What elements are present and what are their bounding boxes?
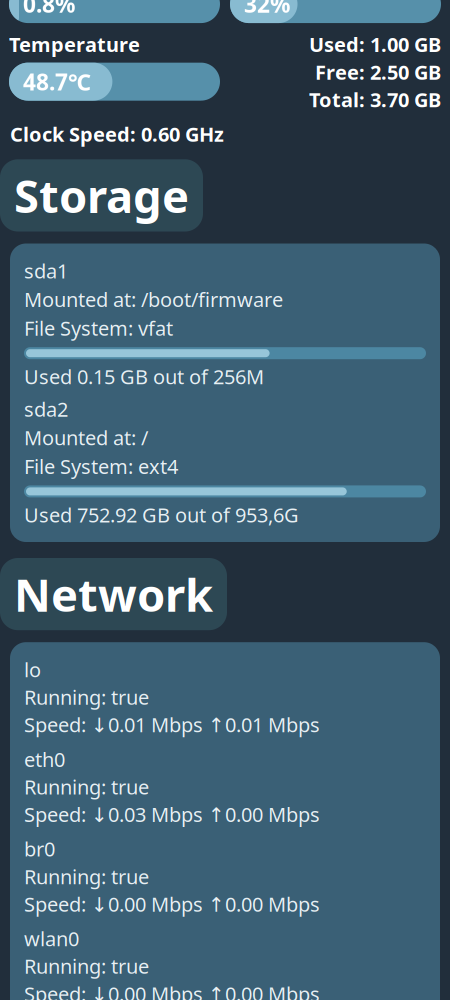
staticText: Running: true <box>24 863 149 890</box>
staticText: Speed: ↓0.00 Mbps ↑0.00 Mbps <box>24 980 320 1000</box>
staticText: sda2 <box>24 396 68 422</box>
staticText: Network <box>14 564 213 624</box>
staticText: Running: true <box>24 773 149 800</box>
staticText: eth0 <box>24 746 65 772</box>
staticText: Used 752.92 GB out of 953,6G <box>24 501 299 528</box>
staticText: Speed: ↓0.01 Mbps ↑0.01 Mbps <box>24 711 320 738</box>
staticText: Clock Speed: 0.60 GHz <box>10 121 224 147</box>
staticText: 0.8% <box>23 0 75 19</box>
staticText: Running: true <box>24 953 149 979</box>
staticText: Total: 3.70 GB <box>309 86 441 113</box>
staticText: lo <box>24 656 41 683</box>
staticText: File System: ext4 <box>24 453 178 479</box>
staticText: Speed: ↓0.00 Mbps ↑0.00 Mbps <box>24 891 320 917</box>
staticText: sda1 <box>24 257 68 284</box>
staticText: Speed: ↓0.03 Mbps ↑0.00 Mbps <box>24 801 320 828</box>
staticText: Mounted at: / <box>24 424 148 451</box>
staticText: Mounted at: /boot/firmware <box>24 286 283 313</box>
staticText: br0 <box>24 835 55 862</box>
staticText: 32% <box>244 0 290 19</box>
staticText: Running: true <box>24 684 149 710</box>
staticText: Used 0.15 GB out of 256M <box>24 363 264 390</box>
staticText: Used: 1.00 GB <box>309 31 441 58</box>
staticText: Temperature <box>9 31 140 58</box>
staticText: Storage <box>14 165 189 225</box>
staticText: Free: 2.50 GB <box>315 59 441 85</box>
staticText: 48.7℃ <box>23 67 91 97</box>
staticText: wlan0 <box>24 925 79 952</box>
staticText: File System: vfat <box>24 315 173 341</box>
